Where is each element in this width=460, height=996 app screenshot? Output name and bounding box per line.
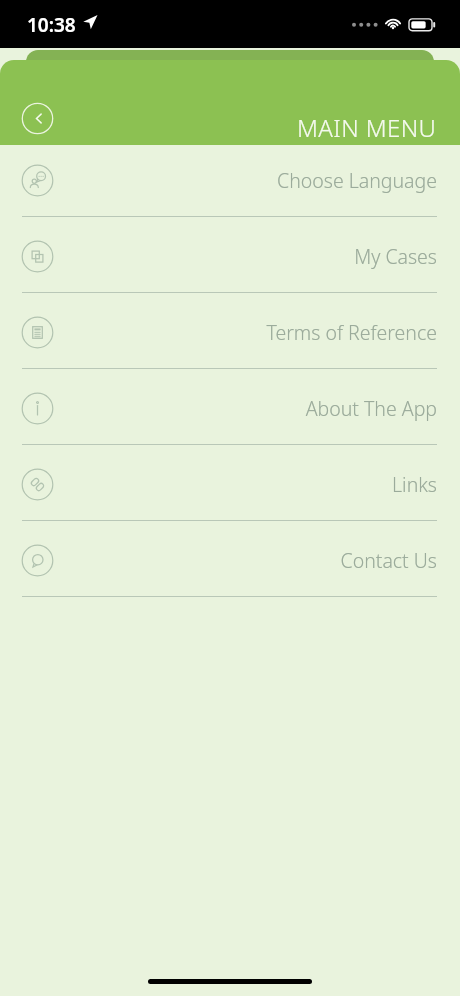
button[interactable]: Contact Us xyxy=(0,525,460,601)
button[interactable]: About The App xyxy=(0,373,460,449)
staticText: 10:38 xyxy=(27,12,76,38)
button[interactable]: My Cases xyxy=(0,221,460,297)
staticText: Choose Language xyxy=(66,167,437,194)
staticText: Terms of Reference xyxy=(66,319,437,346)
button[interactable]: Back xyxy=(21,102,54,135)
button[interactable]: Terms of Reference xyxy=(0,297,460,373)
button[interactable]: Choose Language xyxy=(0,145,460,221)
staticText: About The App xyxy=(66,395,437,422)
staticText: MAIN MENU xyxy=(297,111,437,144)
button[interactable]: Links xyxy=(0,449,460,525)
staticText: My Cases xyxy=(66,243,437,270)
staticText: Contact Us xyxy=(66,547,437,574)
staticText: Links xyxy=(66,471,437,498)
